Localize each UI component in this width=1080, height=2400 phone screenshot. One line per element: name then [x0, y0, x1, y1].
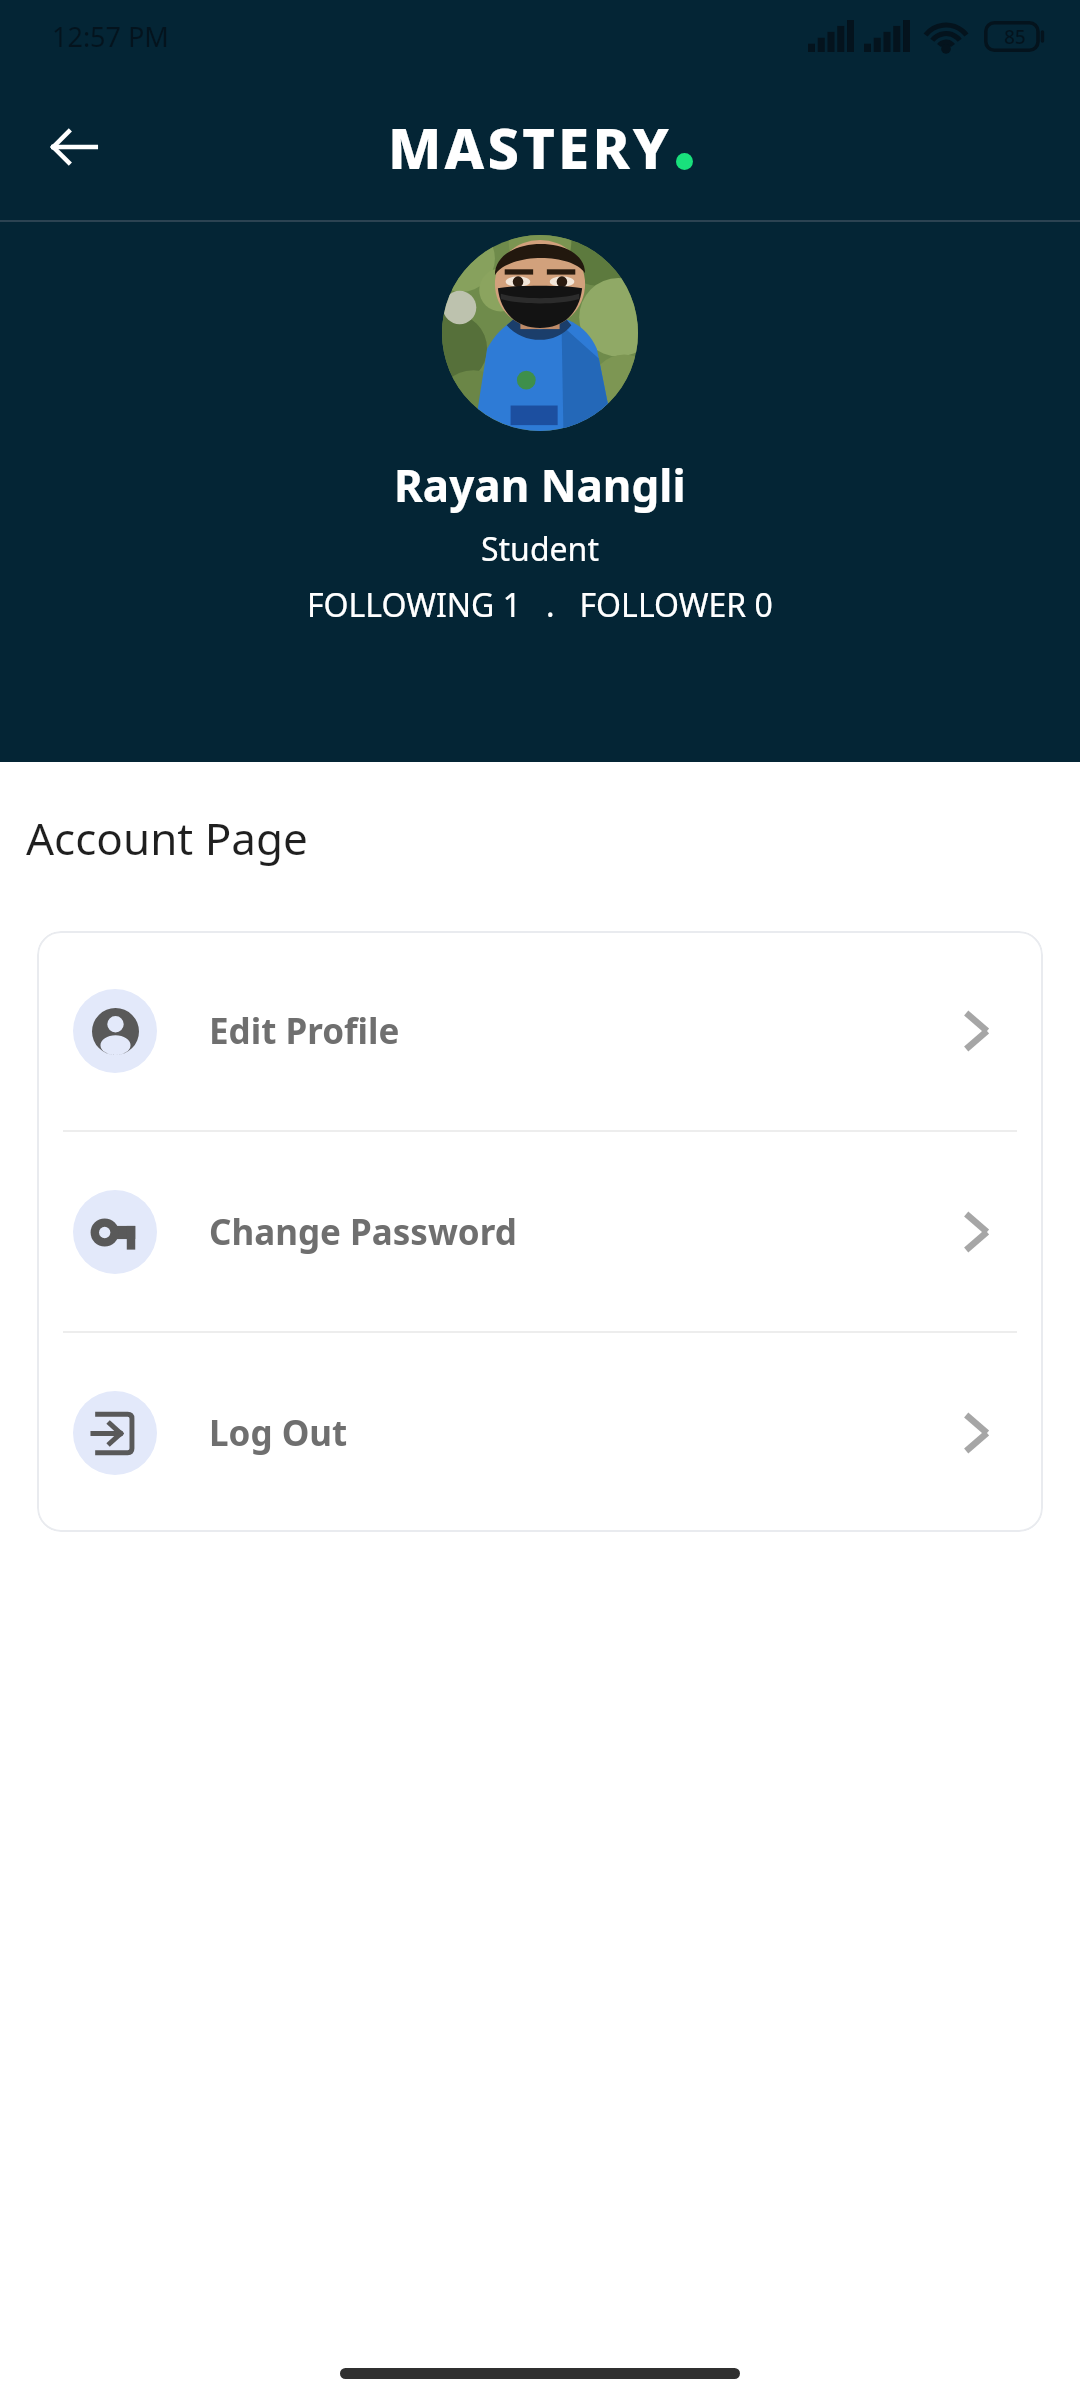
button[interactable]: Profile photo	[442, 235, 638, 431]
staticText: FOLLOWING 1 . FOLLOWER 0	[307, 583, 773, 627]
button[interactable]: Change Password	[37, 1132, 1043, 1331]
staticText: Edit Profile	[209, 1007, 400, 1055]
button[interactable]: Log Out	[37, 1333, 1043, 1532]
staticText: MASTERY	[388, 109, 673, 185]
staticText: 85	[1004, 24, 1026, 50]
button[interactable]: Edit Profile	[37, 931, 1043, 1130]
staticText: Rayan Nangli	[394, 455, 686, 515]
button[interactable]: Back	[26, 99, 122, 195]
staticText: 12:57 PM	[52, 18, 169, 55]
staticText: Account Page	[26, 808, 308, 868]
staticText: Change Password	[209, 1208, 517, 1256]
staticText: Log Out	[209, 1409, 348, 1457]
staticText: Student	[481, 527, 599, 571]
